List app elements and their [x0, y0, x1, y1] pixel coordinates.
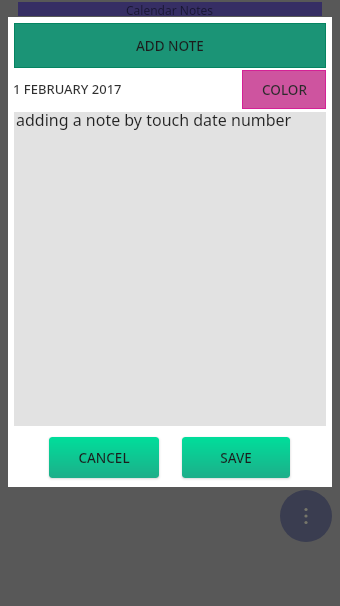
staticText: CANCEL [78, 449, 130, 467]
staticText: 1 FEBRUARY 2017 [13, 80, 122, 98]
button[interactable]: ADD NOTE [15, 24, 325, 67]
button[interactable]: adding a note by touch date number [14, 112, 326, 426]
staticText: ADD NOTE [136, 37, 204, 55]
staticText: SAVE [220, 449, 252, 467]
button[interactable]: More options [280, 490, 332, 542]
staticText: COLOR [262, 81, 307, 99]
button[interactable]: COLOR [243, 71, 325, 108]
button[interactable]: SAVE [182, 437, 290, 478]
staticText: Calendar Notes [126, 2, 214, 16]
button[interactable]: CANCEL [49, 437, 159, 478]
staticText: adding a note by touch date number [16, 109, 292, 131]
